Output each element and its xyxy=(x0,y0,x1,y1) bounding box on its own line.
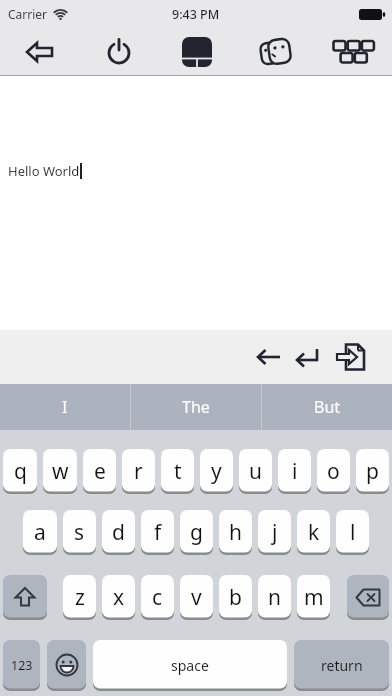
button[interactable]: q xyxy=(3,449,37,493)
staticText: t xyxy=(174,457,182,486)
button[interactable] xyxy=(79,28,158,75)
button[interactable]: l xyxy=(336,510,369,554)
button[interactable]: k xyxy=(297,510,330,554)
staticText: p xyxy=(366,457,379,486)
button[interactable] xyxy=(256,347,282,367)
staticText: o xyxy=(327,457,340,486)
button[interactable]: return xyxy=(294,640,389,690)
button[interactable]: x xyxy=(102,575,135,619)
button[interactable] xyxy=(3,575,47,619)
staticText: 9:43 PM xyxy=(172,6,220,23)
staticText: f xyxy=(154,518,162,547)
button[interactable]: space xyxy=(93,640,287,690)
button[interactable]: g xyxy=(180,510,213,554)
button[interactable]: m xyxy=(297,575,330,619)
button[interactable]: i xyxy=(278,449,311,493)
staticText: c xyxy=(152,583,163,612)
staticText: k xyxy=(308,518,320,547)
staticText: i xyxy=(292,457,298,486)
staticText: Hello World xyxy=(8,162,80,180)
button[interactable] xyxy=(236,28,314,75)
button[interactable]: The xyxy=(131,384,261,430)
staticText: q xyxy=(14,457,27,486)
button[interactable]: s xyxy=(63,510,96,554)
staticText: s xyxy=(74,518,85,547)
staticText: b xyxy=(229,583,242,612)
button[interactable]: j xyxy=(258,510,291,554)
staticText: j xyxy=(272,518,278,547)
button[interactable]: b xyxy=(219,575,252,619)
staticText: d xyxy=(112,518,125,547)
staticText: y xyxy=(211,457,222,486)
staticText: m xyxy=(304,583,324,612)
staticText: g xyxy=(190,518,203,547)
button[interactable]: n xyxy=(258,575,291,619)
button[interactable]: e xyxy=(83,449,116,493)
staticText: h xyxy=(229,518,242,547)
staticText: x xyxy=(113,583,125,612)
button[interactable]: y xyxy=(200,449,233,493)
button[interactable] xyxy=(335,342,367,372)
button[interactable]: r xyxy=(122,449,155,493)
staticText: v xyxy=(191,583,202,612)
button[interactable] xyxy=(0,28,79,75)
button[interactable]: z xyxy=(63,575,96,619)
button[interactable]: I xyxy=(0,384,130,430)
staticText: Carrier xyxy=(8,6,48,22)
button[interactable] xyxy=(47,640,86,690)
staticText: return xyxy=(321,656,363,675)
staticText: space xyxy=(171,656,209,675)
button[interactable]: u xyxy=(239,449,272,493)
button[interactable]: h xyxy=(219,510,252,554)
button[interactable]: But xyxy=(262,384,392,430)
button[interactable]: o xyxy=(317,449,350,493)
staticText: But xyxy=(314,396,341,418)
button[interactable]: p xyxy=(356,449,389,493)
button[interactable] xyxy=(158,28,236,75)
button[interactable] xyxy=(314,28,392,75)
staticText: z xyxy=(75,583,85,612)
staticText: n xyxy=(268,583,281,612)
staticText: w xyxy=(52,457,69,486)
staticText: e xyxy=(94,457,106,486)
staticText: r xyxy=(134,457,143,486)
button[interactable]: f xyxy=(141,510,174,554)
staticText: I xyxy=(62,396,68,418)
button[interactable] xyxy=(347,575,389,619)
button[interactable]: c xyxy=(141,575,174,619)
button[interactable]: 123 xyxy=(3,640,40,690)
button[interactable]: w xyxy=(43,449,77,493)
staticText: 123 xyxy=(11,657,33,674)
button[interactable]: d xyxy=(102,510,135,554)
staticText: l xyxy=(350,518,356,547)
button[interactable]: t xyxy=(161,449,194,493)
staticText: a xyxy=(34,518,46,547)
button[interactable]: v xyxy=(180,575,213,619)
button[interactable] xyxy=(295,347,321,367)
staticText: The xyxy=(182,396,210,418)
staticText: u xyxy=(249,457,262,486)
button[interactable]: a xyxy=(23,510,57,554)
